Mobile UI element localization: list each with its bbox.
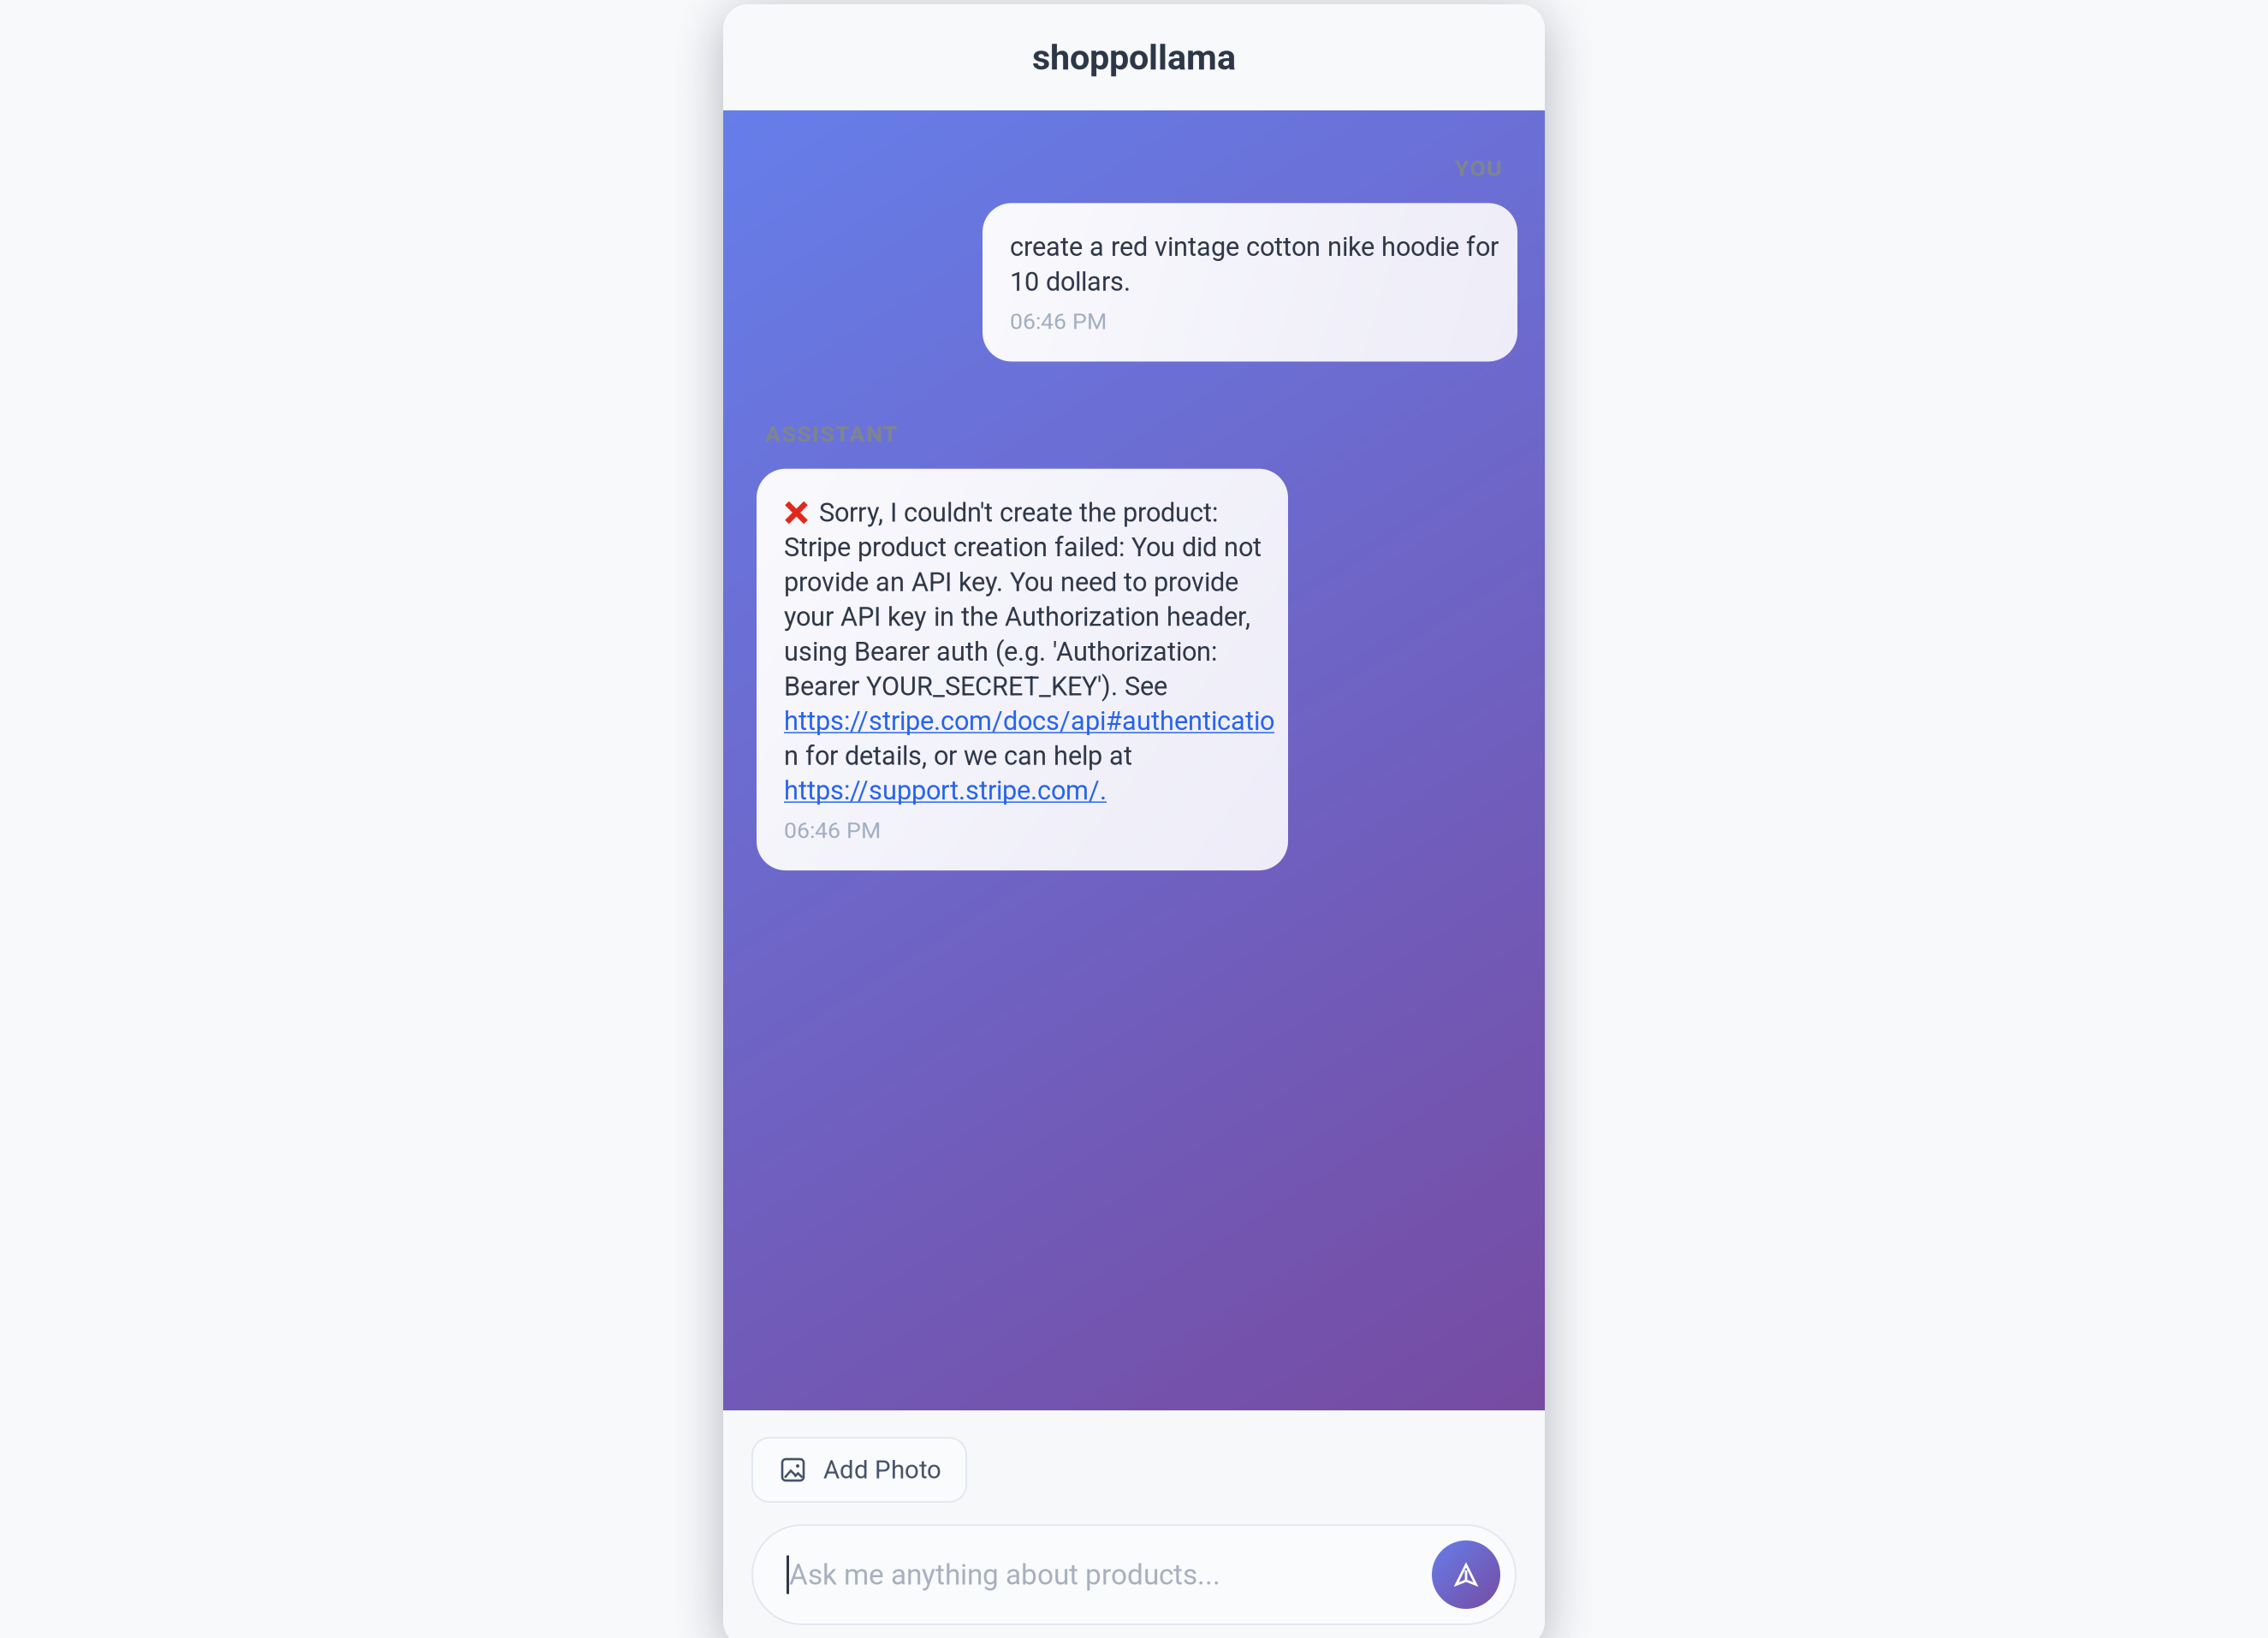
staticText: ASSISTANT (765, 421, 898, 447)
staticText: create a red vintage cotton nike hoodie … (1010, 232, 1499, 262)
staticText: https://stripe.com/docs/api#authenticati… (784, 706, 1274, 736)
button[interactable]: Send (1432, 1540, 1500, 1609)
staticText: https://support.stripe.com/. (784, 775, 1107, 806)
staticText: Stripe product creation failed: You did … (784, 532, 1262, 563)
staticText: n for details, or we can help at (784, 740, 1132, 771)
staticText: 10 dollars. (1010, 266, 1131, 297)
staticText: Sorry, I couldn't create the product: (819, 497, 1218, 528)
staticText: Add Photo (823, 1455, 941, 1485)
staticText: 06:46 PM (784, 817, 881, 844)
staticText: provide an API key. You need to provide (784, 567, 1238, 597)
staticText: your API key in the Authorization header… (784, 601, 1250, 632)
staticText: shoppollama (1032, 37, 1236, 78)
staticText: 06:46 PM (1010, 308, 1107, 335)
staticText: YOU (1455, 155, 1502, 182)
staticText: using Bearer auth (e.g. 'Authorization: (784, 636, 1217, 667)
button[interactable]: Add Photo (752, 1438, 966, 1502)
staticText: Bearer YOUR_SECRET_KEY'). See (784, 671, 1167, 702)
staticText: Ask me anything about products... (789, 1558, 1220, 1591)
